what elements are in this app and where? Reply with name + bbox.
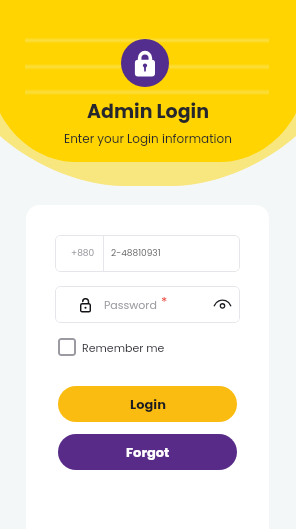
staticText: Forgot — [126, 443, 170, 461]
button[interactable]: Forgot — [58, 434, 237, 470]
staticText: * — [161, 292, 168, 310]
button[interactable]: Show password — [208, 286, 236, 323]
button[interactable]: Remember me — [58, 338, 165, 356]
staticText: Enter your Login information — [64, 130, 232, 147]
button[interactable]: +880 — [55, 235, 240, 272]
button[interactable]: Login — [58, 386, 237, 422]
staticText: 2-48810931 — [111, 247, 161, 260]
staticText: Password — [104, 297, 157, 312]
staticText: +880 — [71, 247, 95, 260]
staticText: Remember me — [82, 340, 165, 355]
button[interactable]: Password — [55, 286, 240, 323]
staticText: Admin Login — [87, 98, 209, 125]
staticText: Login — [130, 395, 166, 413]
